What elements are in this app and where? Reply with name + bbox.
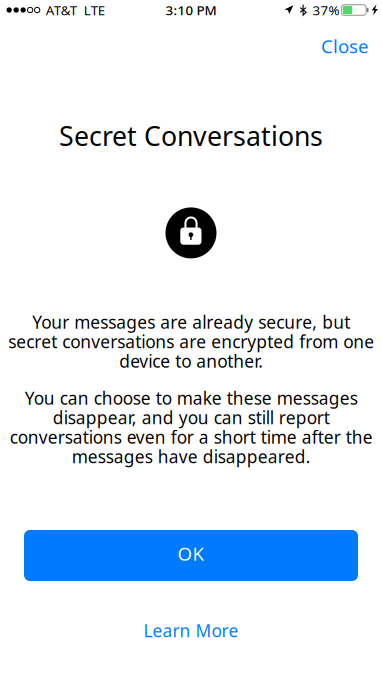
staticText: Secret Conversations (59, 118, 323, 153)
button[interactable]: Close (308, 17, 382, 75)
button[interactable]: Learn More (123, 609, 258, 652)
staticText: 37% (313, 1, 340, 19)
staticText: LTE (84, 1, 105, 19)
staticText: AT&T (46, 1, 77, 19)
button[interactable]: OK (24, 530, 358, 581)
staticText: Close (321, 34, 369, 58)
staticText: OK (177, 541, 204, 566)
staticText: Learn More (143, 619, 238, 642)
staticText: 3:10 PM (165, 1, 216, 19)
staticText: Your messages are already secure, but se… (8, 310, 374, 372)
staticText: You can choose to make these messages di… (9, 386, 372, 468)
